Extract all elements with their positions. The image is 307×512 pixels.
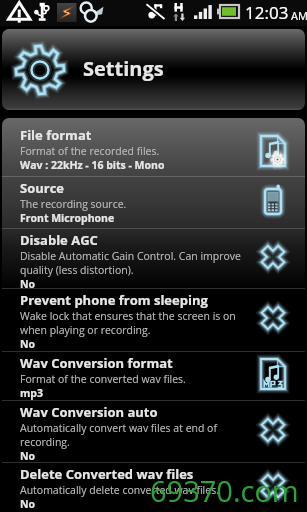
staticText: No: [20, 337, 36, 351]
staticText: Format of the recorded files.: [20, 144, 160, 158]
staticText: Automatically convert wav files at end o…: [20, 421, 217, 435]
staticText: 69370.com: [150, 471, 299, 510]
other: Prevent phone from sleeping: [258, 301, 288, 335]
button[interactable]: Settings: [2, 29, 305, 110]
staticText: Settings: [83, 55, 164, 82]
other: Wav Conversion format: [258, 357, 288, 391]
staticText: Delete Converted wav files: [20, 465, 194, 483]
staticText: Prevent phone from sleeping: [20, 291, 208, 309]
staticText: No: [20, 277, 36, 290]
staticText: Wav Conversion auto: [20, 403, 158, 421]
other: Source: [258, 184, 288, 218]
staticText: File format: [20, 126, 92, 144]
staticText: quality (less distortion).: [20, 263, 134, 277]
staticText: Automatically delete converted wav files…: [20, 483, 219, 497]
other: Wav Conversion auto: [258, 413, 288, 447]
staticText: Front Microphone: [20, 211, 115, 225]
staticText: Wav Conversion format: [20, 354, 173, 372]
button[interactable]: Prevent phone from sleeping: [2, 289, 305, 351]
staticText: Wav : 22kHz - 16 bits - Mono: [20, 158, 165, 172]
other: Disable AGC: [258, 240, 288, 274]
button[interactable]: Source: [2, 177, 305, 228]
other: Delete Converted wav files: [258, 469, 288, 503]
staticText: recording.: [20, 435, 70, 449]
button[interactable]: Wav Conversion auto: [2, 401, 305, 462]
staticText: Disable AGC: [20, 231, 98, 249]
staticText: Format of the converted wav files.: [20, 372, 186, 386]
staticText: Wake lock that ensures that the screen i…: [20, 309, 236, 323]
staticText: No: [20, 449, 36, 463]
staticText: Disable Automatic Gain Control. Can impr…: [20, 249, 241, 263]
button[interactable]: Disable AGC: [2, 229, 305, 288]
staticText: 12:03: [245, 1, 289, 24]
button[interactable]: File format: [2, 118, 305, 176]
button[interactable]: Delete Converted wav files: [2, 463, 305, 512]
staticText: Source: [20, 179, 65, 197]
staticText: No: [20, 497, 36, 511]
staticText: when playing or recording.: [20, 323, 151, 337]
staticText: mp3: [20, 386, 43, 400]
other: File format: [258, 134, 288, 168]
button[interactable]: Wav Conversion format: [2, 352, 305, 400]
staticText: The recording source.: [20, 197, 127, 211]
staticText: AM: [291, 8, 307, 23]
